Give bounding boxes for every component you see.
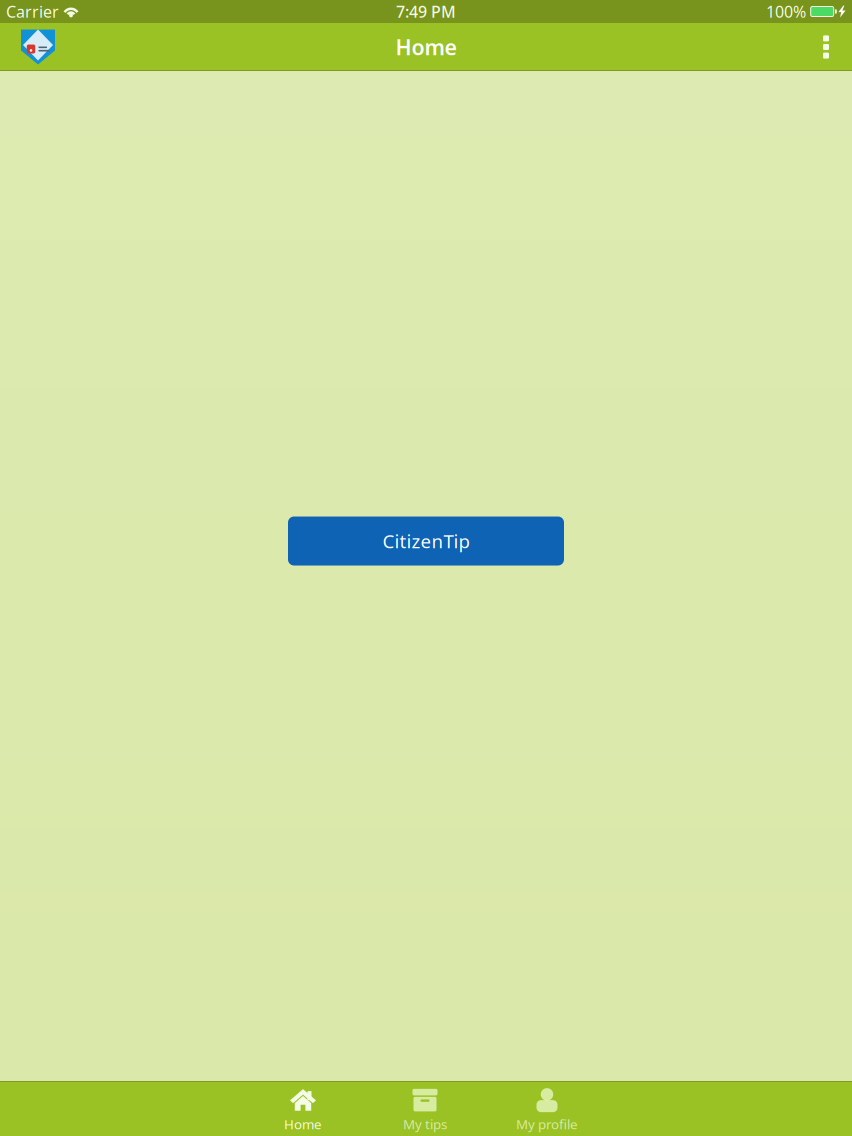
staticText: 7:49 PM — [396, 1, 456, 22]
button[interactable]: Home Service — [14, 23, 62, 71]
staticText: Carrier — [6, 1, 59, 22]
button[interactable]: My profile — [486, 1081, 608, 1136]
staticText: CitizenTip — [382, 529, 469, 553]
button[interactable]: More options — [803, 23, 849, 71]
button[interactable]: My tips — [364, 1081, 486, 1136]
button[interactable]: Home — [242, 1081, 364, 1136]
staticText: My profile — [516, 1115, 578, 1133]
staticText: Home — [395, 33, 456, 61]
staticText: Home — [284, 1115, 322, 1133]
staticText: My tips — [403, 1115, 447, 1133]
staticText: 100% — [766, 1, 806, 22]
button[interactable]: CitizenTip — [288, 516, 564, 565]
